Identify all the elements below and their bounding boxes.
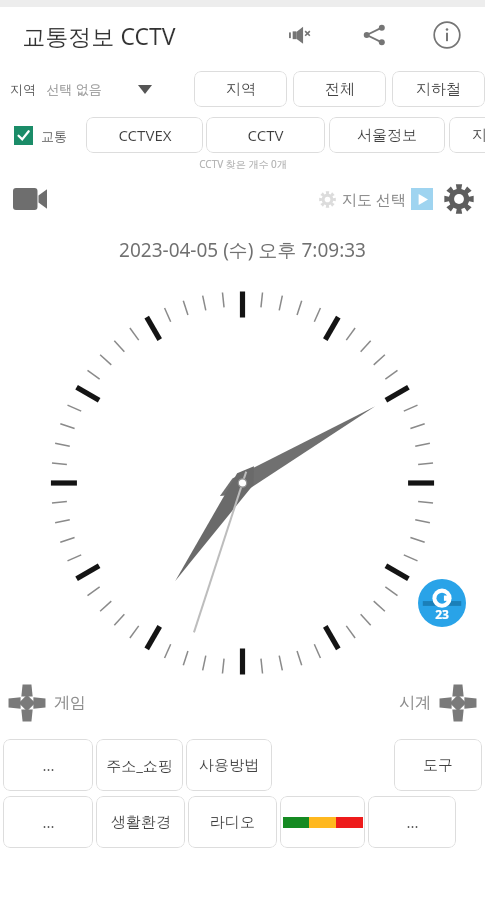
button[interactable]: 게임 [6, 682, 86, 724]
button[interactable]: Mute [277, 11, 325, 59]
button[interactable]: ... [3, 739, 93, 791]
staticText: 라디오 [210, 813, 255, 832]
staticText: ... [42, 755, 55, 775]
button[interactable]: 지역 [194, 71, 287, 107]
button[interactable]: 시계 [399, 682, 479, 724]
staticText: CCTV [247, 125, 284, 145]
button[interactable]: 도구 [394, 739, 482, 791]
staticText: 2023-04-05 (수) 오후 7:09:33 [119, 237, 366, 263]
button[interactable]: Compass 23 [418, 579, 466, 627]
staticText: ... [406, 812, 419, 832]
button[interactable]: 지 [449, 117, 485, 153]
staticText: ... [42, 812, 55, 832]
button[interactable]: 지역 [10, 80, 152, 98]
staticText: 시계 [399, 693, 431, 713]
button[interactable]: Share [350, 11, 398, 59]
staticText: 서울정보 [357, 126, 417, 145]
staticText: 게임 [54, 693, 86, 713]
button[interactable]: 사용방법 [186, 739, 272, 791]
button[interactable]: CCTVEX [86, 117, 203, 153]
button[interactable]: Settings [441, 181, 477, 217]
button[interactable]: Camera [8, 177, 52, 221]
staticText: 전체 [325, 80, 355, 99]
staticText: CCTV 찾은 개수 0개 [199, 157, 287, 171]
staticText: 지 [472, 126, 485, 145]
button[interactable]: 라디오 [188, 796, 277, 848]
staticText: 지역 [226, 80, 256, 99]
button[interactable]: 지도 선택 [342, 189, 406, 209]
staticText: 교통정보 CCTV [22, 20, 176, 51]
button[interactable]: Play map [411, 188, 433, 210]
button[interactable]: Info [423, 11, 471, 59]
button[interactable]: 서울정보 [329, 117, 445, 153]
button[interactable]: ... [3, 796, 93, 848]
staticText: 주소_쇼핑 [106, 755, 173, 775]
staticText: 지도 선택 [342, 189, 406, 209]
staticText: 도구 [423, 756, 453, 775]
button[interactable]: 지하철 [392, 71, 485, 107]
button[interactable]: 생활환경 [96, 796, 185, 848]
staticText: 지하철 [416, 80, 461, 99]
button[interactable]: Traffic level [280, 796, 365, 848]
staticText: 사용방법 [199, 756, 259, 775]
button[interactable]: 전체 [293, 71, 386, 107]
button[interactable]: ... [368, 796, 456, 848]
button[interactable]: 주소_쇼핑 [96, 739, 183, 791]
staticText: 생활환경 [111, 813, 171, 832]
staticText: 선택 없음 [46, 80, 102, 98]
staticText: 교통 [41, 128, 67, 144]
button[interactable]: 교통 [14, 126, 67, 145]
staticText: 지역 [10, 81, 36, 97]
staticText: CCTVEX [118, 125, 172, 145]
staticText: 23 [435, 606, 449, 622]
button[interactable]: CCTV [206, 117, 325, 153]
